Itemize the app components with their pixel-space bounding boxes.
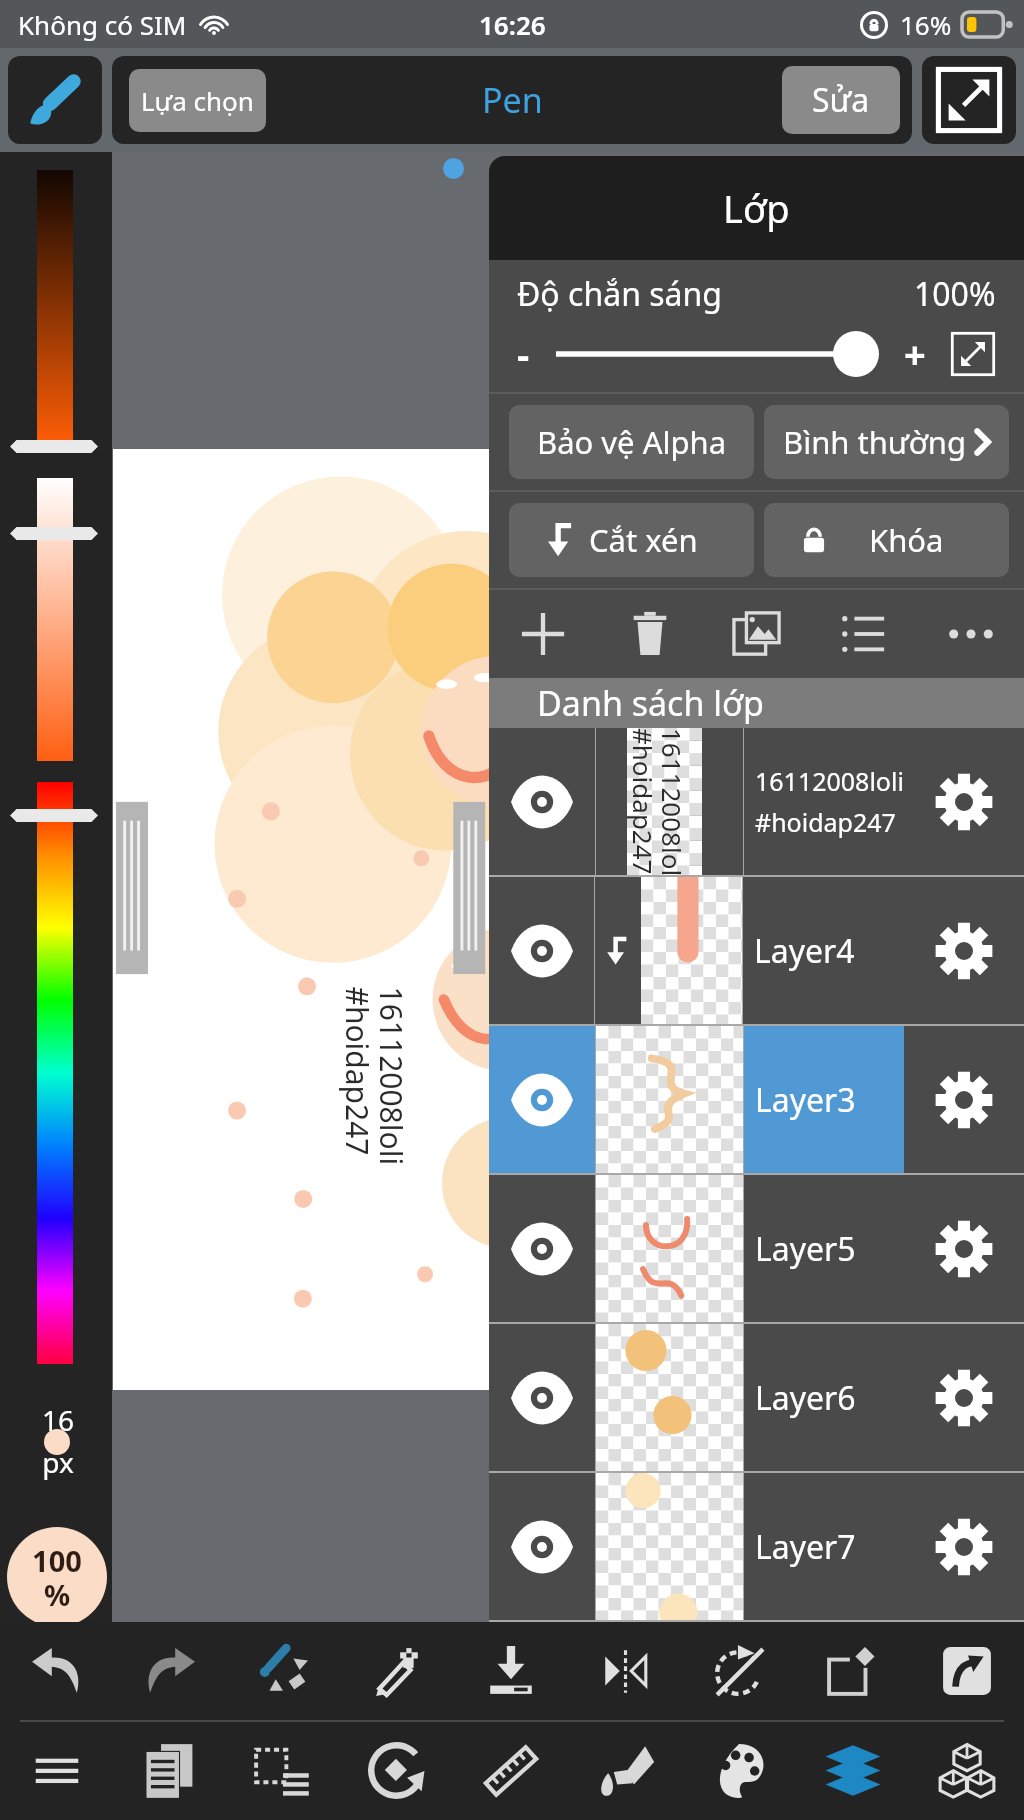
button[interactable]: Layer settings [904, 1026, 1024, 1173]
staticText: - [517, 328, 530, 380]
button[interactable]: Layer settings [904, 1473, 1024, 1620]
button[interactable]: Save [454, 1622, 568, 1720]
button[interactable]: Layer3 [489, 1026, 1024, 1173]
staticText: Cắt xén [589, 519, 698, 561]
button[interactable]: Add layer [489, 590, 596, 678]
staticText: 16112008loli #hoidap247 [627, 728, 690, 875]
staticText: 16112008loli #hoidap247 [337, 986, 411, 1165]
staticText: Bình thường [783, 421, 967, 463]
button[interactable]: Layers [796, 1722, 910, 1820]
button[interactable]: Cắt xén [509, 503, 754, 577]
button[interactable]: Menu [0, 1722, 113, 1820]
staticText: Độ chắn sáng [517, 272, 722, 316]
staticText: Bảo vệ Alpha [537, 421, 727, 463]
button[interactable]: 16112008loli #hoidap247 [489, 728, 1024, 875]
staticText: Lớp [723, 182, 790, 234]
button[interactable]: Undo [0, 1622, 113, 1720]
button[interactable]: Redo [113, 1622, 226, 1720]
button[interactable]: Ruler [454, 1722, 568, 1820]
button[interactable]: Delete layer [596, 590, 703, 678]
button[interactable]: Layer7 [489, 1473, 1024, 1620]
button[interactable]: Layer4 [489, 877, 1024, 1024]
button[interactable]: Brush tool [8, 56, 102, 144]
button[interactable]: Layer settings [904, 1324, 1024, 1471]
staticText: 16112008loli #hoidap247 [755, 764, 904, 840]
staticText: 16% [900, 7, 952, 42]
button[interactable]: Canvas [113, 1722, 226, 1820]
staticText: Lựa chọn [141, 83, 254, 118]
staticText: Danh sách lớp [537, 680, 764, 726]
button[interactable]: Sửa [782, 66, 900, 134]
button[interactable]: More options [917, 590, 1024, 678]
staticText: 16:26 [479, 7, 546, 42]
button[interactable]: Bảo vệ Alpha [509, 405, 754, 479]
button[interactable]: Layer settings [904, 1175, 1024, 1322]
button[interactable]: Palette [682, 1722, 796, 1820]
staticText: px [2, 1443, 114, 1481]
button[interactable]: Layer6 [489, 1324, 1024, 1471]
button[interactable]: Stabilizer off [682, 1622, 796, 1720]
staticText: Layer7 [755, 1525, 856, 1569]
button[interactable]: Transform [796, 1622, 910, 1720]
button[interactable]: Layer settings [904, 728, 1024, 875]
button[interactable]: Khóa [764, 503, 1009, 577]
button[interactable]: Fullscreen [922, 56, 1016, 144]
button[interactable]: Materials [910, 1722, 1024, 1820]
staticText: Layer3 [755, 1078, 856, 1122]
button[interactable]: Import image [703, 590, 810, 678]
button[interactable]: Switch tool [226, 1622, 340, 1720]
staticText: Layer4 [754, 929, 855, 973]
button[interactable]: Layer5 [489, 1175, 1024, 1322]
staticText: Layer5 [755, 1227, 856, 1271]
staticText: Khóa [869, 519, 944, 561]
button[interactable]: Rotate [340, 1722, 454, 1820]
staticText: Không có SIM [18, 7, 187, 42]
button[interactable]: Selection [226, 1722, 340, 1820]
button[interactable]: Lựa chọn [129, 69, 266, 132]
staticText: Layer6 [755, 1376, 856, 1420]
button[interactable]: Eyedropper [340, 1622, 454, 1720]
staticText: 100 % [32, 1541, 82, 1614]
button[interactable]: Layer list [810, 590, 917, 678]
staticText: 16 [2, 1401, 114, 1439]
staticText: + [904, 328, 926, 380]
staticText: Sửa [812, 78, 870, 122]
button[interactable]: Bình thường [764, 405, 1009, 479]
staticText: 100% [914, 272, 996, 316]
staticText: Pen [482, 77, 543, 123]
button[interactable]: Layer settings [904, 877, 1024, 1024]
button[interactable]: 100 % [7, 1527, 107, 1627]
button[interactable]: Fill [568, 1722, 682, 1820]
button[interactable]: Symmetry [568, 1622, 682, 1720]
button[interactable]: Export [910, 1622, 1024, 1720]
